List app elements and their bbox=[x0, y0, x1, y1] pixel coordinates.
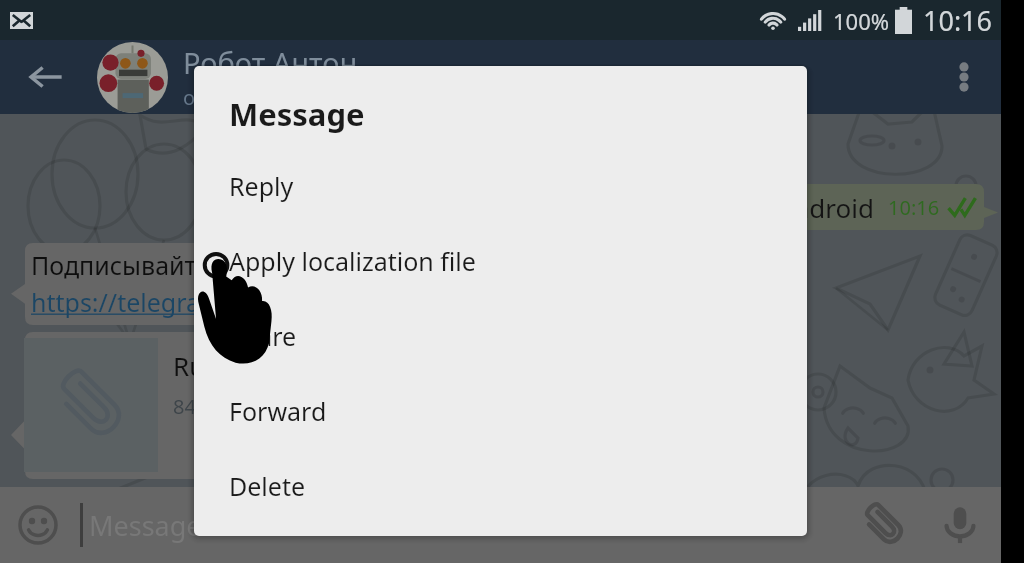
staticText: Delete bbox=[229, 469, 306, 503]
button[interactable]: Forward bbox=[194, 373, 807, 448]
button[interactable]: Attach file bbox=[846, 487, 922, 563]
staticText: 10:16 bbox=[888, 194, 940, 221]
button[interactable]: Emoji bbox=[0, 487, 76, 563]
staticText: Робот Антон bbox=[183, 43, 358, 82]
staticText: Apply localization file bbox=[229, 244, 476, 278]
staticText: online bbox=[183, 84, 242, 111]
staticText: Message bbox=[229, 93, 365, 135]
staticText: 84.2 MB bbox=[173, 393, 250, 420]
staticText: Привет android bbox=[680, 190, 874, 225]
staticText: 100% bbox=[833, 6, 890, 36]
button[interactable]: More options bbox=[927, 40, 1001, 114]
button[interactable]: Share bbox=[194, 298, 807, 373]
button[interactable]: Apply localization file bbox=[194, 223, 807, 298]
button[interactable]: Record voice message bbox=[922, 487, 998, 563]
button[interactable]: Reply bbox=[194, 148, 807, 223]
button[interactable]: Back bbox=[12, 43, 80, 111]
staticText: Message bbox=[89, 507, 202, 544]
staticText: https://telegram.me/ bbox=[31, 285, 277, 319]
button[interactable]: Delete bbox=[194, 448, 807, 523]
staticText: 10:16 bbox=[923, 2, 993, 39]
staticText: Reply bbox=[229, 169, 294, 203]
staticText: Share bbox=[229, 319, 297, 353]
staticText: Forward bbox=[229, 394, 327, 428]
staticText: Подписывайтесь на bbox=[31, 248, 272, 282]
staticText: RuStore.apk bbox=[173, 348, 321, 383]
